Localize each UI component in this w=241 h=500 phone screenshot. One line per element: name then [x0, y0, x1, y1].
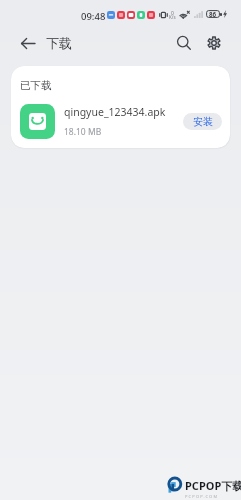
staticText: 下载: [46, 35, 72, 51]
button[interactable]: Search: [174, 33, 194, 53]
button[interactable]: Back: [18, 33, 38, 53]
staticText: 86: [209, 10, 217, 18]
staticText: 18.10 MB: [64, 126, 102, 138]
button[interactable]: qingyue_123434.apk: [11, 94, 230, 148]
staticText: PCPOP下载: [185, 478, 241, 493]
staticText: 0: [171, 10, 174, 17]
staticText: 09:48: [81, 10, 106, 23]
staticText: 已下载: [20, 79, 52, 92]
staticText: PCPOP.COM: [185, 494, 219, 499]
button[interactable]: 安装: [183, 113, 222, 130]
button[interactable]: Settings: [204, 33, 224, 53]
staticText: qingyue_123434.apk: [64, 105, 166, 119]
staticText: 安装: [193, 115, 213, 128]
staticText: K/s: [169, 14, 176, 20]
